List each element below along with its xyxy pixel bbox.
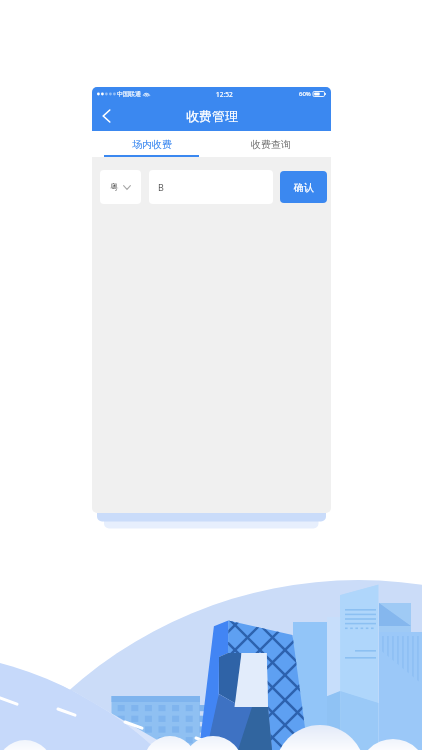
button[interactable]: 确认	[280, 171, 327, 203]
staticText: 中国联通	[117, 90, 141, 98]
staticText: 场内收费	[132, 138, 172, 151]
staticText: 12:52	[216, 90, 233, 99]
staticText: B	[158, 181, 164, 193]
button[interactable]: 收费查询	[211, 131, 331, 157]
staticText: 收费管理	[186, 108, 238, 124]
staticText: 粤	[110, 182, 119, 193]
staticText: 60%	[299, 90, 311, 98]
button[interactable]: B	[149, 170, 273, 204]
button[interactable]: 粤	[100, 170, 141, 204]
button[interactable]: Back	[92, 103, 118, 129]
staticText: 收费查询	[251, 138, 291, 151]
button[interactable]: 场内收费	[92, 131, 211, 157]
staticText: 确认	[294, 181, 314, 194]
